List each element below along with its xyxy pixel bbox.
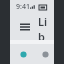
- staticText: 9:41: [16, 2, 30, 12]
- staticText: Library: [38, 14, 48, 40]
- button[interactable]: Home: [10, 44, 36, 64]
- button[interactable]: Menu: [16, 18, 34, 36]
- button[interactable]: Search: [36, 44, 54, 64]
